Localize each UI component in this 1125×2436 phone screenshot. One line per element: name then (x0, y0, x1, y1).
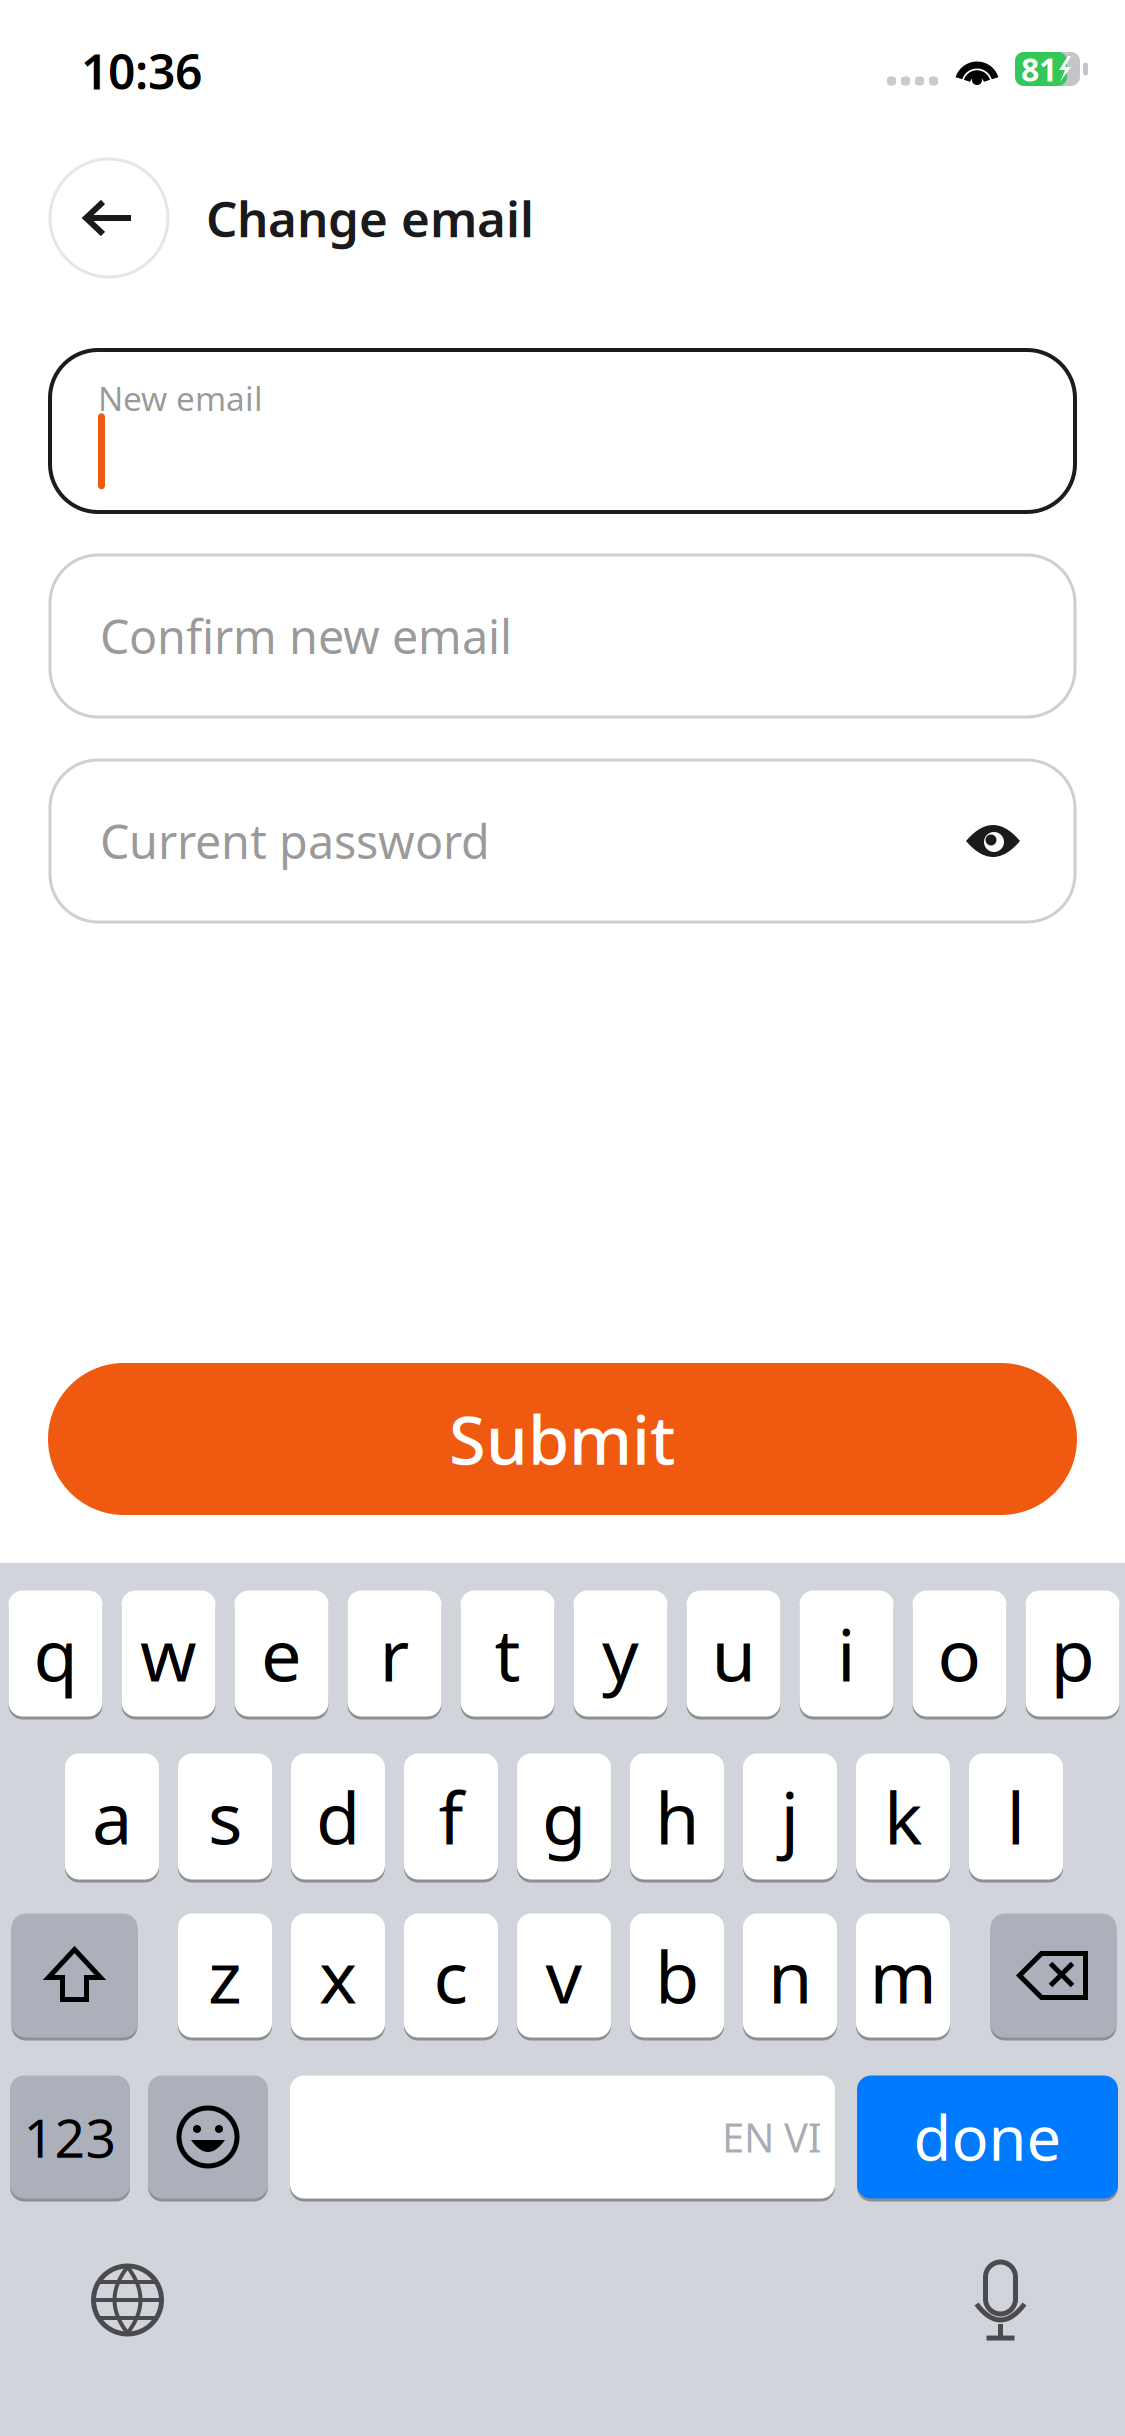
staticText: v (545, 1928, 582, 2023)
button[interactable]: Back (50, 159, 168, 277)
staticText: f (438, 1769, 463, 1864)
button[interactable]: Shift (11, 1912, 137, 2039)
staticText: q (33, 1606, 77, 1701)
button[interactable]: n (743, 1912, 837, 2039)
staticText: d (316, 1769, 360, 1864)
staticText: m (869, 1928, 936, 2023)
staticText: 10:36 (81, 39, 202, 103)
staticText: p (1050, 1606, 1094, 1701)
staticText: Confirm new email (100, 605, 512, 667)
staticText: i (837, 1606, 856, 1701)
staticText: t (494, 1606, 520, 1701)
button[interactable]: Dictate (964, 2256, 1036, 2344)
staticText: c (433, 1928, 468, 2023)
button[interactable]: c (404, 1912, 498, 2039)
button[interactable]: Submit (0, 1363, 1125, 1515)
button[interactable]: w (121, 1589, 215, 1718)
button[interactable]: Emoji (148, 2074, 268, 2200)
button[interactable]: v (517, 1912, 611, 2039)
staticText: o (937, 1606, 981, 1701)
button[interactable]: i (799, 1589, 893, 1718)
staticText: done (913, 2096, 1061, 2178)
staticText: a (92, 1769, 132, 1864)
button[interactable]: o (912, 1589, 1006, 1718)
button[interactable]: k (856, 1752, 950, 1881)
button[interactable]: y (573, 1589, 667, 1718)
staticText: r (379, 1606, 409, 1701)
staticText: New email (98, 376, 263, 420)
button[interactable]: space (290, 2074, 835, 2200)
button[interactable]: Delete (990, 1912, 1116, 2039)
staticText: Change email (206, 185, 534, 251)
staticText: k (884, 1769, 922, 1864)
button[interactable]: Next keyboard (91, 2264, 163, 2336)
staticText: y (602, 1606, 639, 1701)
button[interactable]: 123 (10, 2074, 130, 2200)
staticText: j (780, 1769, 799, 1864)
staticText: e (261, 1606, 302, 1701)
staticText: EN VI (722, 2110, 822, 2163)
button[interactable]: a (65, 1752, 159, 1881)
button[interactable]: g (517, 1752, 611, 1881)
staticText: s (208, 1769, 242, 1864)
button[interactable]: p (1025, 1589, 1119, 1718)
button[interactable]: j (743, 1752, 837, 1881)
staticText: w (140, 1606, 197, 1701)
staticText: z (208, 1928, 242, 2023)
button[interactable]: r (347, 1589, 441, 1718)
staticText: n (768, 1928, 812, 2023)
button[interactable]: m (856, 1912, 950, 2039)
staticText: b (655, 1928, 699, 2023)
staticText: h (655, 1769, 699, 1864)
button[interactable]: s (178, 1752, 272, 1881)
staticText: 81 (1021, 48, 1057, 90)
button[interactable]: h (630, 1752, 724, 1881)
button[interactable]: u (686, 1589, 780, 1718)
button[interactable]: d (291, 1752, 385, 1881)
staticText: 123 (23, 2102, 116, 2172)
staticText: g (542, 1769, 586, 1864)
button[interactable]: t (460, 1589, 554, 1718)
staticText: x (319, 1928, 357, 2023)
button[interactable]: z (178, 1912, 272, 2039)
button[interactable]: done (857, 2074, 1118, 2200)
button[interactable]: q (8, 1589, 102, 1718)
button[interactable]: l (969, 1752, 1063, 1881)
staticText: Current password (100, 810, 490, 872)
button[interactable]: f (404, 1752, 498, 1881)
button[interactable]: x (291, 1912, 385, 2039)
staticText: l (1006, 1769, 1025, 1864)
button[interactable]: b (630, 1912, 724, 2039)
staticText: Submit (449, 1395, 676, 1483)
staticText: u (711, 1606, 755, 1701)
button[interactable]: e (234, 1589, 328, 1718)
